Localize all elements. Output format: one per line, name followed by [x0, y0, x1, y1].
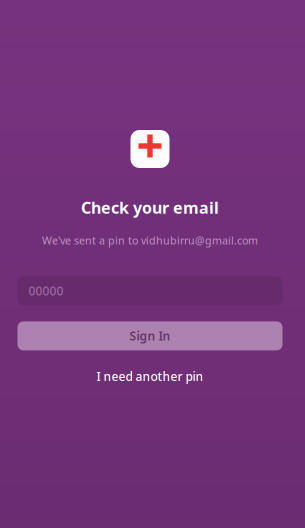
staticText: Sign In [129, 328, 170, 344]
staticText: We've sent a pin to vidhubirru@gmail.com [42, 233, 258, 247]
staticText: Check your email [81, 197, 219, 218]
staticText: I need another pin [96, 368, 203, 384]
button[interactable]: PIN code [17, 276, 282, 305]
button[interactable]: Sign In [17, 321, 282, 350]
staticText: 00000 [28, 283, 63, 299]
button[interactable]: I need another pin [86, 364, 213, 388]
